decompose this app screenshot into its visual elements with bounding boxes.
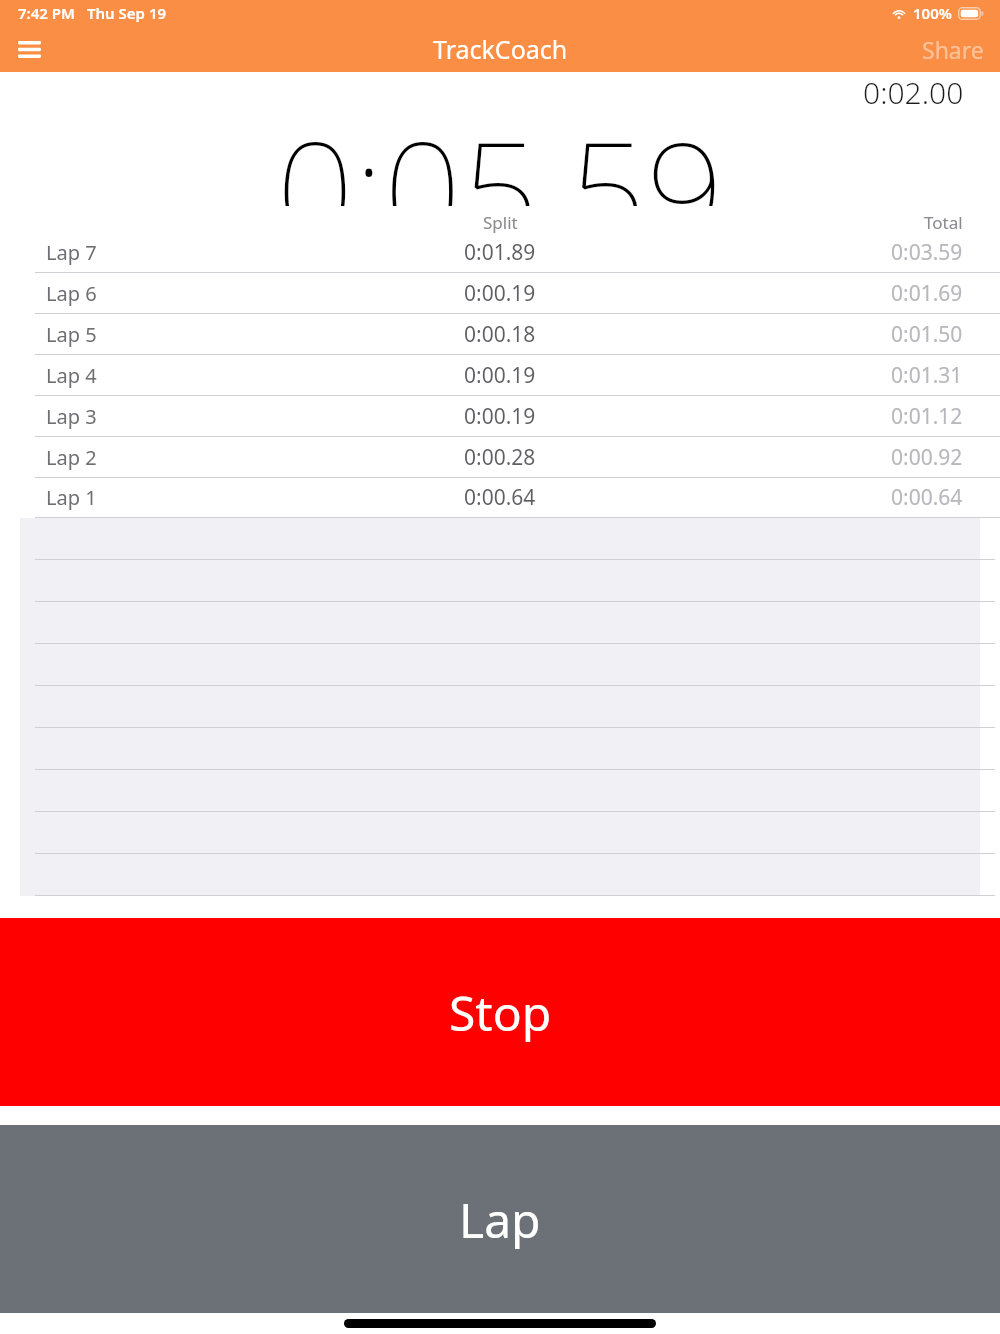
button[interactable]: Lap 4 [0, 355, 1000, 396]
staticText: Lap 3 [46, 403, 97, 430]
staticText: Lap 1 [46, 484, 97, 511]
button[interactable]: Lap 1 [0, 477, 1000, 518]
staticText: 0:02.00 [863, 72, 964, 106]
staticText: Thu Sep 19 [87, 3, 167, 23]
button[interactable]: Lap 3 [0, 396, 1000, 437]
staticText: 0:00.28 [464, 443, 536, 472]
staticText: Lap [459, 1187, 541, 1252]
staticText: Lap 5 [46, 321, 97, 348]
staticText: 7:42 PM [18, 3, 75, 23]
staticText: 0:00.19 [464, 279, 536, 308]
button[interactable]: Lap 6 [0, 273, 1000, 314]
staticText: 0:00.19 [464, 402, 536, 431]
staticText: 0:01.69 [891, 279, 963, 308]
staticText: 0:01.31 [891, 361, 963, 390]
button[interactable]: Lap 5 [0, 314, 1000, 355]
staticText: 0:05.59 [276, 96, 724, 206]
staticText: 0:01.50 [891, 320, 963, 349]
staticText: 0:00.92 [891, 443, 963, 472]
staticText: Stop [449, 980, 552, 1045]
staticText: Lap 7 [46, 239, 97, 266]
staticText: 100% [913, 3, 952, 23]
button[interactable]: Lap 7 [0, 232, 1000, 273]
staticText: 0:00.18 [464, 320, 536, 349]
staticText: 0:01.12 [891, 402, 963, 431]
staticText: 0:00.19 [464, 361, 536, 390]
staticText: 0:00.64 [464, 483, 536, 512]
staticText: 0:01.89 [464, 238, 536, 267]
button[interactable]: Stop [0, 918, 1000, 1106]
staticText: Lap 6 [46, 280, 97, 307]
staticText: Lap 4 [46, 362, 97, 389]
button[interactable]: Menu [8, 28, 50, 70]
staticText: Split [483, 211, 518, 234]
staticText: 0:00.64 [891, 483, 963, 512]
staticText: Total [924, 211, 963, 234]
button[interactable]: Lap [0, 1125, 1000, 1313]
button[interactable]: Share [922, 34, 984, 65]
staticText: Share [922, 34, 984, 65]
staticText: Lap 2 [46, 444, 97, 471]
staticText: TrackCoach [433, 32, 568, 66]
button[interactable]: Lap 2 [0, 437, 1000, 478]
staticText: 0:03.59 [891, 238, 963, 267]
